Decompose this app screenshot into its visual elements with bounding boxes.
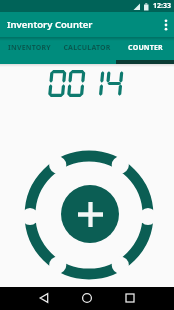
staticText: CALCULATOR (63, 43, 111, 53)
button[interactable] (158, 17, 174, 33)
button[interactable]: INVENTORY (0, 37, 58, 64)
staticText: COUNTER (128, 43, 163, 53)
button[interactable]: COUNTER (116, 37, 174, 64)
button[interactable] (61, 185, 119, 243)
staticText: 12:33 (153, 1, 171, 11)
staticText: INVENTORY (8, 43, 51, 53)
button[interactable]: CALCULATOR (58, 37, 116, 64)
button[interactable] (79, 290, 95, 306)
staticText: Inventory Counter (7, 18, 93, 31)
button[interactable] (122, 290, 138, 306)
button[interactable] (36, 290, 52, 306)
